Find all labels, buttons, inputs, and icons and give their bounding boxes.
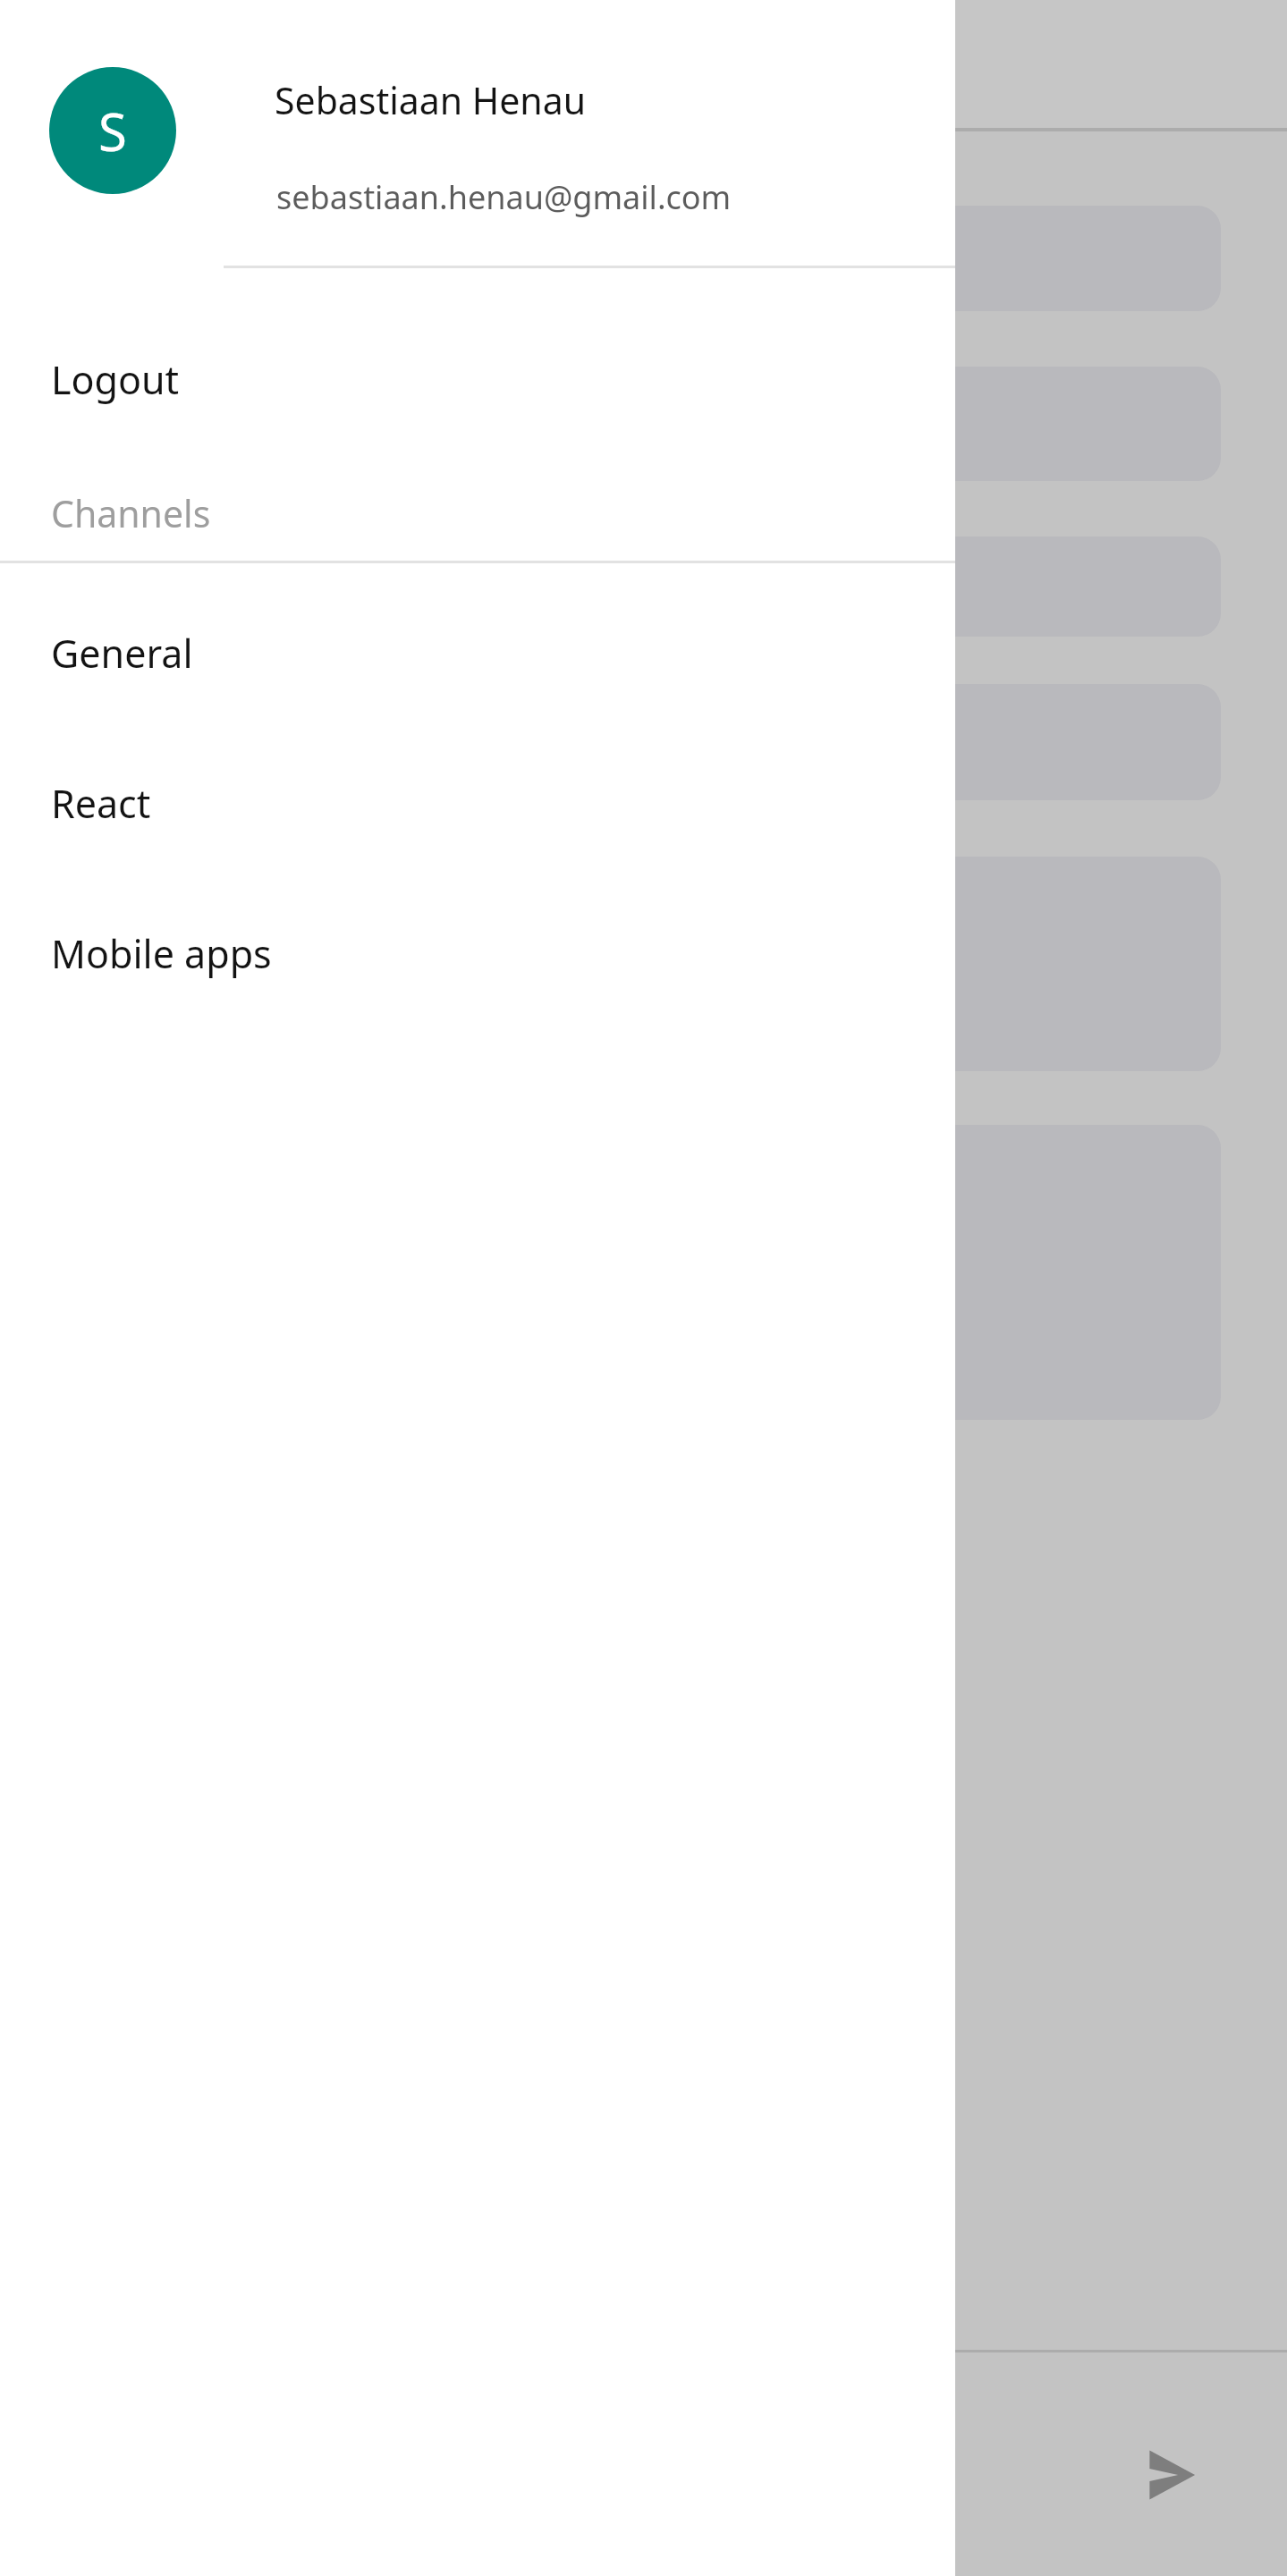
staticText: Sebastiaan Henau [275, 75, 587, 125]
staticText: Mobile apps [51, 927, 272, 980]
staticText: S [98, 96, 127, 166]
staticText: Logout [51, 353, 180, 406]
staticText: General [51, 627, 193, 680]
button[interactable]: Send [1102, 2414, 1223, 2536]
button[interactable]: Mobile apps [0, 878, 955, 1028]
button[interactable]: React [0, 728, 955, 878]
staticText: Channels [51, 488, 211, 538]
button[interactable]: General [0, 578, 955, 728]
staticText: sebastiaan.henau@gmail.com [276, 175, 732, 219]
button[interactable]: S [49, 67, 176, 194]
staticText: React [51, 777, 151, 830]
button[interactable]: Logout [0, 304, 955, 454]
